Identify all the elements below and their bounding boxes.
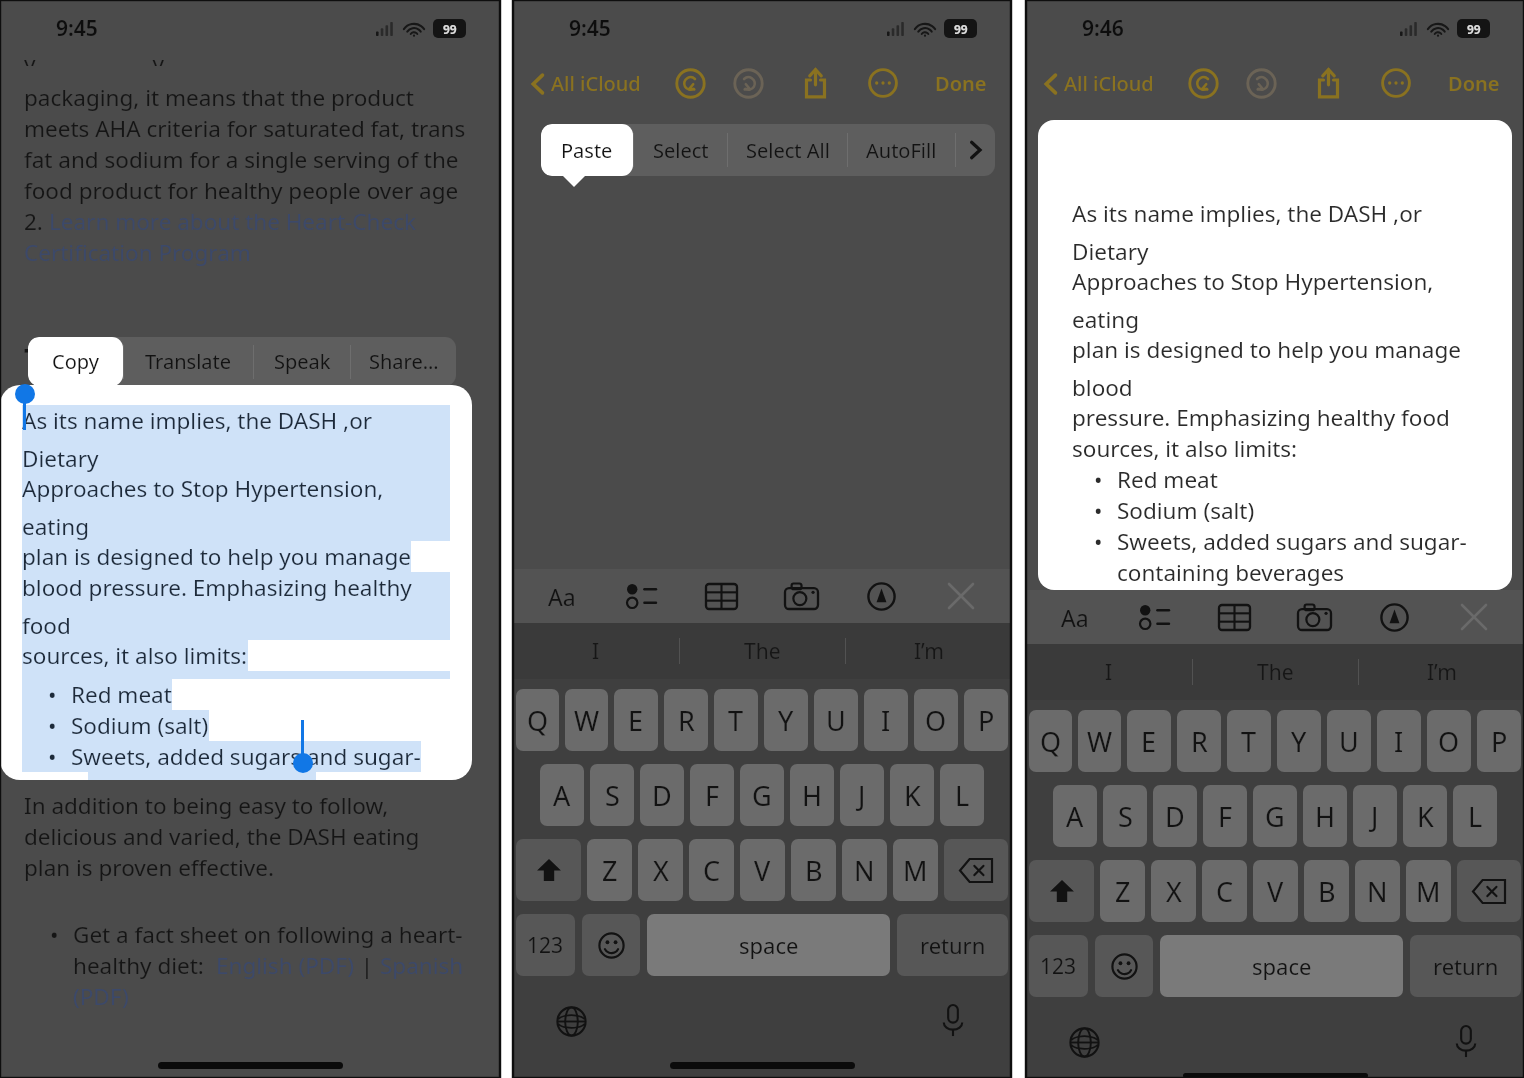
button[interactable]: N	[1355, 860, 1400, 922]
button[interactable]: B	[1304, 860, 1349, 922]
button[interactable]: More	[1374, 61, 1418, 105]
button[interactable]: N	[842, 839, 887, 901]
button[interactable]: H	[790, 764, 834, 826]
button[interactable]: Close keyboard	[938, 573, 984, 619]
button[interactable]: AutoFill	[848, 124, 955, 176]
button[interactable]: All iCloud	[1040, 64, 1158, 103]
button[interactable]: English (PDF)	[216, 950, 355, 981]
button[interactable]: Shift	[516, 839, 581, 901]
button[interactable]: R	[1177, 710, 1221, 772]
button[interactable]: Markup	[858, 573, 904, 619]
button[interactable]: M	[1406, 860, 1451, 922]
button[interactable]: I’m	[846, 623, 1011, 679]
button[interactable]: R	[664, 689, 708, 751]
button[interactable]: space	[1160, 935, 1403, 997]
button[interactable]: Redo	[726, 61, 770, 105]
button[interactable]: Paste	[541, 124, 633, 176]
button[interactable]: Close keyboard	[1451, 594, 1497, 640]
button[interactable]: C	[1202, 860, 1247, 922]
button[interactable]: F	[1203, 785, 1247, 847]
button[interactable]: Z	[1100, 860, 1145, 922]
button[interactable]: I	[864, 689, 908, 751]
button[interactable]: Certification Program	[24, 237, 251, 268]
button[interactable]: E	[614, 689, 658, 751]
button[interactable]: H	[1303, 785, 1347, 847]
button[interactable]: Select All	[728, 124, 847, 176]
button[interactable]: C	[689, 839, 734, 901]
button[interactable]: Done	[1442, 64, 1506, 103]
button[interactable]: Dictate	[1442, 1018, 1490, 1066]
button[interactable]: G	[740, 764, 784, 826]
button[interactable]: F	[690, 764, 734, 826]
button[interactable]: Switch language	[547, 997, 595, 1045]
button[interactable]: V	[740, 839, 785, 901]
button[interactable]: O	[914, 689, 958, 751]
button[interactable]: V	[1253, 860, 1298, 922]
button[interactable]: E	[1127, 710, 1171, 772]
button[interactable]: X	[638, 839, 683, 901]
button[interactable]: Speak	[254, 337, 350, 386]
button[interactable]: Learn more about the Heart-Check	[49, 206, 416, 237]
button[interactable]: Shift	[1029, 860, 1094, 922]
button[interactable]: Markup	[1371, 594, 1417, 640]
button[interactable]: D	[640, 764, 684, 826]
button[interactable]: I	[513, 623, 679, 679]
button[interactable]: D	[1153, 785, 1197, 847]
button[interactable]: P	[1477, 710, 1521, 772]
button[interactable]: J	[840, 764, 884, 826]
button[interactable]: Z	[587, 839, 632, 901]
button[interactable]: Translate	[124, 337, 253, 386]
button[interactable]: U	[1327, 710, 1371, 772]
button[interactable]: Delete	[944, 839, 1008, 901]
button[interactable]: Dictate	[929, 997, 977, 1045]
button[interactable]: The	[1193, 644, 1358, 700]
button[interactable]: 123	[516, 914, 575, 976]
button[interactable]: Table	[1211, 594, 1257, 640]
button[interactable]: J	[1353, 785, 1397, 847]
button[interactable]: U	[814, 689, 858, 751]
button[interactable]: Copy	[28, 337, 123, 386]
button[interactable]: L	[940, 764, 984, 826]
button[interactable]: A	[540, 764, 584, 826]
button[interactable]: T	[714, 689, 758, 751]
button[interactable]: return	[897, 914, 1008, 976]
button[interactable]: Checklist	[1131, 594, 1177, 640]
button[interactable]: K	[1403, 785, 1447, 847]
button[interactable]: Y	[1277, 710, 1321, 772]
button[interactable]: space	[647, 914, 890, 976]
button[interactable]: Undo	[668, 61, 712, 105]
button[interactable]: I	[1026, 644, 1192, 700]
button[interactable]: Undo	[1181, 61, 1225, 105]
button[interactable]: Format	[539, 573, 585, 619]
button[interactable]: I’m	[1359, 644, 1524, 700]
button[interactable]: Checklist	[618, 573, 664, 619]
button[interactable]: Y	[764, 689, 808, 751]
button[interactable]: (PDF)	[73, 981, 129, 1012]
button[interactable]: return	[1410, 935, 1521, 997]
button[interactable]: Select	[634, 124, 727, 176]
button[interactable]: Share	[1306, 61, 1350, 105]
button[interactable]: W	[1078, 710, 1121, 772]
button[interactable]: Table	[698, 573, 744, 619]
button[interactable]: I	[1377, 710, 1421, 772]
button[interactable]: M	[893, 839, 938, 901]
button[interactable]: Q	[516, 689, 559, 751]
button[interactable]: B	[791, 839, 836, 901]
button[interactable]: G	[1253, 785, 1297, 847]
button[interactable]: L	[1453, 785, 1497, 847]
button[interactable]: Emoji	[1095, 935, 1153, 997]
button[interactable]: Done	[929, 64, 993, 103]
button[interactable]: S	[590, 764, 634, 826]
button[interactable]: All iCloud	[527, 64, 645, 103]
button[interactable]: T	[1227, 710, 1271, 772]
button[interactable]: Switch language	[1060, 1018, 1108, 1066]
button[interactable]: O	[1427, 710, 1471, 772]
button[interactable]: More options	[956, 124, 995, 176]
button[interactable]: 123	[1029, 935, 1088, 997]
button[interactable]: Emoji	[582, 914, 640, 976]
button[interactable]: K	[890, 764, 934, 826]
button[interactable]: Share	[793, 61, 837, 105]
button[interactable]: The	[680, 623, 845, 679]
button[interactable]: Spanish	[380, 950, 464, 981]
button[interactable]: X	[1151, 860, 1196, 922]
